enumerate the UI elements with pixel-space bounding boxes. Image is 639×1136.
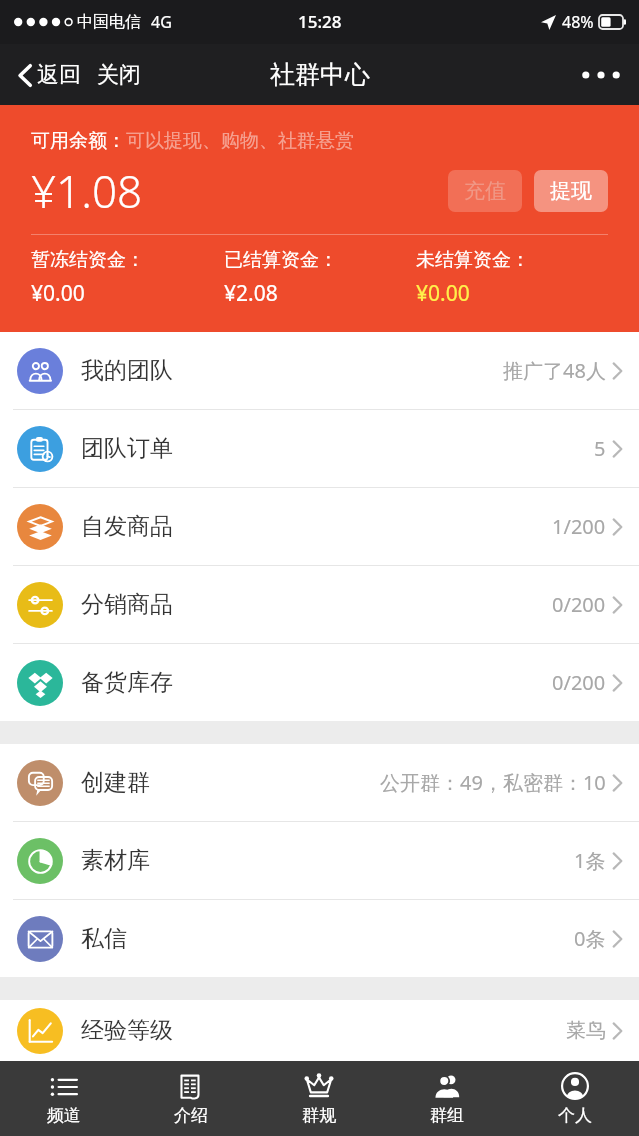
- staticText: 提现: [550, 178, 592, 204]
- staticText: ¥1.08: [31, 161, 143, 221]
- staticText: 1条: [574, 847, 606, 874]
- button[interactable]: 提现: [534, 170, 608, 212]
- staticText: 0/200: [552, 669, 606, 696]
- staticText: 频道: [47, 1105, 81, 1126]
- button[interactable]: 团队订单: [0, 410, 639, 487]
- staticText: 素材库: [81, 846, 150, 875]
- staticText: ¥0.00: [416, 279, 470, 308]
- button[interactable]: 充值: [448, 170, 522, 212]
- staticText: 我的团队: [81, 356, 173, 385]
- button[interactable]: 关闭: [93, 55, 145, 95]
- button[interactable]: 个人: [511, 1061, 639, 1136]
- button[interactable]: 返回: [13, 55, 85, 95]
- staticText: ¥0.00: [31, 279, 85, 308]
- button[interactable]: 创建群: [0, 744, 639, 821]
- staticText: 5: [594, 435, 606, 462]
- staticText: 4G: [151, 11, 172, 33]
- staticText: 菜鸟: [566, 1018, 606, 1043]
- staticText: 充值: [464, 178, 506, 204]
- staticText: 可用余额：: [31, 129, 126, 153]
- staticText: 公开群：49，私密群：10: [380, 769, 606, 796]
- staticText: 暂冻结资金：: [31, 248, 145, 272]
- button[interactable]: 分销商品: [0, 566, 639, 643]
- button[interactable]: 频道: [0, 1061, 127, 1136]
- button[interactable]: 群组: [383, 1061, 511, 1136]
- staticText: 经验等级: [81, 1016, 173, 1045]
- staticText: 个人: [558, 1105, 592, 1126]
- staticText: 创建群: [81, 768, 150, 797]
- staticText: 未结算资金：: [416, 248, 530, 272]
- staticText: 团队订单: [81, 434, 173, 463]
- staticText: 返回: [37, 61, 81, 89]
- button[interactable]: 备货库存: [0, 644, 639, 721]
- staticText: 已结算资金：: [224, 248, 338, 272]
- staticText: 0/200: [552, 591, 606, 618]
- button[interactable]: 私信: [0, 900, 639, 977]
- staticText: ¥2.08: [224, 279, 278, 308]
- staticText: 15:28: [298, 10, 342, 33]
- staticText: 推广了48人: [503, 357, 606, 384]
- button[interactable]: 群规: [255, 1061, 383, 1136]
- staticText: 社群中心: [270, 59, 370, 90]
- staticText: 自发商品: [81, 512, 173, 541]
- staticText: 备货库存: [81, 668, 173, 697]
- button[interactable]: 素材库: [0, 822, 639, 899]
- button[interactable]: 经验等级: [0, 1000, 639, 1061]
- staticText: 介绍: [174, 1105, 208, 1126]
- button[interactable]: 自发商品: [0, 488, 639, 565]
- staticText: 可以提现、购物、社群悬赏: [126, 129, 354, 153]
- staticText: 群规: [302, 1105, 336, 1126]
- staticText: 分销商品: [81, 590, 173, 619]
- button[interactable]: 介绍: [127, 1061, 255, 1136]
- button[interactable]: More options: [563, 57, 639, 93]
- staticText: 私信: [81, 924, 127, 953]
- staticText: 48%: [562, 11, 594, 33]
- staticText: 中国电信: [77, 12, 141, 32]
- staticText: 0条: [574, 925, 606, 952]
- staticText: 1/200: [552, 513, 606, 540]
- staticText: 群组: [430, 1105, 464, 1126]
- button[interactable]: 我的团队: [0, 332, 639, 409]
